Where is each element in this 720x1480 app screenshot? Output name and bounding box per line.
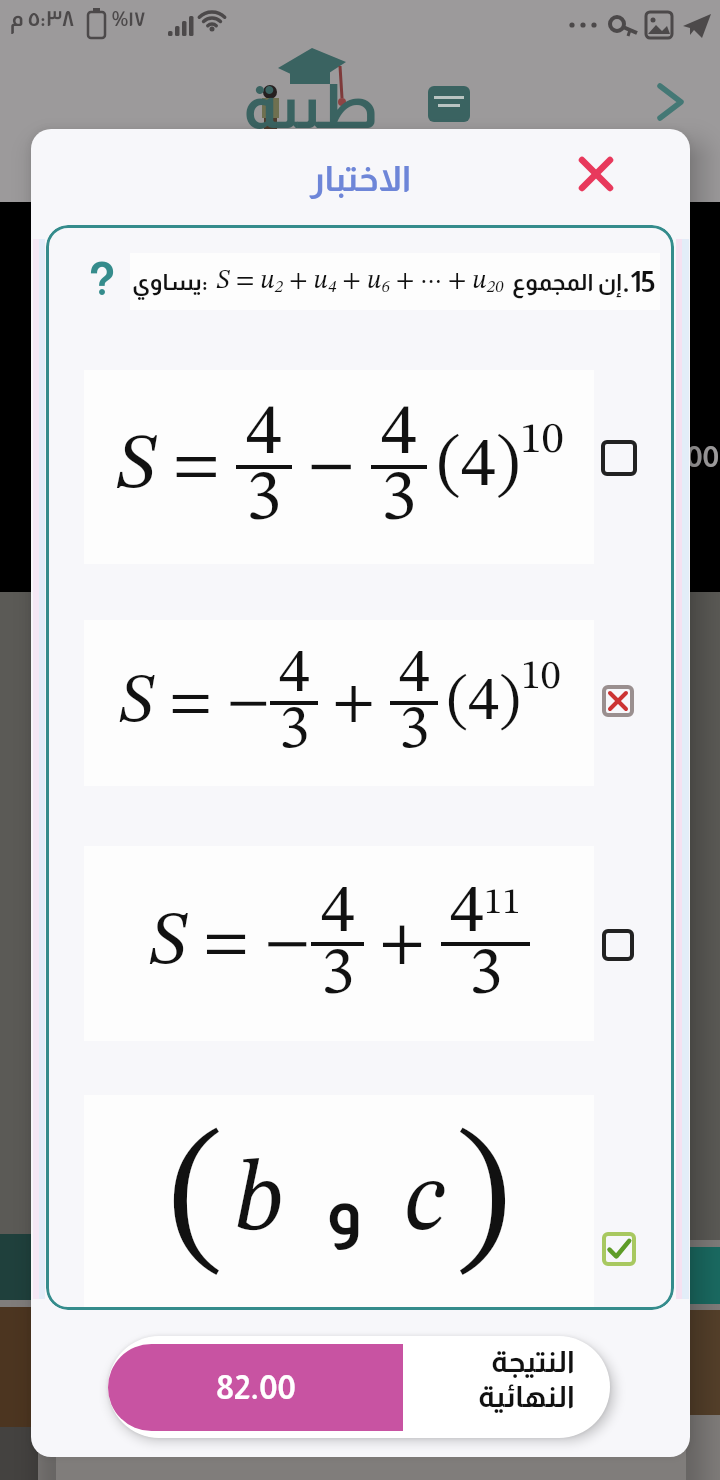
- button[interactable]: (: [84, 1095, 594, 1310]
- staticText: (: [169, 1123, 224, 1283]
- button[interactable]: [108, 1336, 610, 1438]
- button[interactable]: [648, 80, 692, 124]
- staticText: .15: [622, 265, 656, 298]
- staticText: −: [292, 434, 371, 500]
- staticText: النتيجة: [491, 1345, 575, 1378]
- staticText: النهائية: [478, 1380, 575, 1413]
- staticText: و: [326, 1174, 362, 1248]
- staticText: +: [364, 912, 441, 976]
- staticText: 3: [399, 700, 430, 762]
- staticText: (4): [447, 672, 521, 734]
- staticText: ): [455, 1123, 510, 1283]
- staticText: الاختبار: [310, 159, 412, 198]
- button[interactable]: [602, 929, 634, 961]
- staticText: =: [157, 434, 236, 500]
- staticText: 4: [381, 398, 417, 470]
- staticText: (4): [437, 432, 520, 502]
- staticText: S: [118, 669, 155, 737]
- staticText: S: [148, 907, 188, 981]
- button[interactable]: [578, 156, 614, 192]
- staticText: %١٧: [112, 8, 146, 30]
- staticText: 4: [450, 879, 484, 947]
- staticText: 10: [521, 658, 561, 698]
- staticText: 00: [686, 440, 720, 473]
- button[interactable]: [602, 685, 634, 717]
- staticText: 3: [381, 464, 417, 536]
- staticText: c: [404, 1153, 445, 1253]
- staticText: +: [318, 673, 390, 733]
- staticText: 3: [279, 700, 310, 762]
- staticText: 3: [246, 464, 282, 536]
- staticText: ٥:٣٨ م: [10, 6, 75, 31]
- staticText: يساوي:: [132, 269, 208, 295]
- staticText: 4: [246, 398, 282, 470]
- staticText: S = u2 + u4 + u6 + ··· + u20: [216, 268, 504, 296]
- button[interactable]: [601, 440, 637, 476]
- staticText: = −: [155, 673, 270, 733]
- button[interactable]: S: [84, 846, 594, 1041]
- staticText: 4: [279, 644, 310, 706]
- staticText: 82.00: [216, 1369, 296, 1406]
- button[interactable]: [602, 1232, 636, 1266]
- staticText: 4: [321, 879, 355, 947]
- button[interactable]: S: [84, 370, 594, 564]
- staticText: 3: [469, 941, 503, 1009]
- staticText: ?: [88, 253, 116, 304]
- staticText: 11: [484, 885, 521, 922]
- staticText: 3: [321, 941, 355, 1009]
- button[interactable]: 82.00: [108, 1344, 403, 1431]
- button[interactable]: S: [84, 620, 594, 786]
- staticText: طيبة: [243, 72, 379, 141]
- staticText: 4: [399, 644, 430, 706]
- staticText: 10: [520, 418, 564, 462]
- staticText: S: [115, 428, 157, 506]
- staticText: إن المجموع: [512, 269, 622, 295]
- staticText: = −: [188, 912, 311, 976]
- staticText: b: [234, 1153, 284, 1253]
